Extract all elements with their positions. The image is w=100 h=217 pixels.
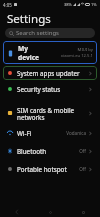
staticText: 4:05 <box>3 2 12 8</box>
staticText: SIM cards & mobile networks <box>17 106 88 121</box>
button[interactable]: Recent apps <box>67 207 100 217</box>
staticText: MIUI by <box>77 47 93 53</box>
staticText: xiaomi.eu 12.5.1 <box>60 53 93 59</box>
staticText: System apps updater <box>17 69 88 78</box>
staticText: Vodanica <box>66 130 86 136</box>
staticText: 1% <box>91 2 97 7</box>
staticText: Wi-Fi <box>17 129 66 138</box>
button[interactable]: Bluetooth <box>3 143 97 159</box>
staticText: Search settings <box>16 29 59 37</box>
staticText: Settings <box>7 11 51 27</box>
button[interactable]: Security status <box>3 82 97 96</box>
button[interactable]: System apps updater <box>3 66 97 80</box>
staticText: Security status <box>17 85 88 94</box>
staticText: Off <box>79 166 86 172</box>
button[interactable]: SIM cards & mobile networks <box>3 103 97 123</box>
staticText: 38% <box>64 2 72 7</box>
staticText: Bluetooth <box>17 147 79 156</box>
staticText: Off <box>79 148 86 154</box>
staticText: Portable hotspot <box>17 165 79 174</box>
button[interactable]: Search settings <box>5 28 95 38</box>
button[interactable]: Wi-Fi <box>3 125 97 141</box>
staticText: My <box>18 44 28 53</box>
button[interactable]: My <box>3 41 97 64</box>
button[interactable]: Portable hotspot <box>3 161 97 177</box>
staticText: device <box>18 53 40 62</box>
